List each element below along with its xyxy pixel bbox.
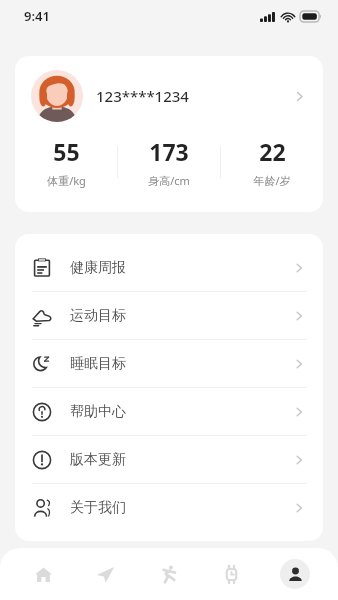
staticText: 身高/cm xyxy=(148,173,190,188)
button[interactable]: 健康周报 xyxy=(15,244,323,291)
staticText: 关于我们 xyxy=(70,499,292,517)
button[interactable]: Watch xyxy=(200,548,263,600)
button[interactable]: 版本更新 xyxy=(15,436,323,483)
staticText: 睡眠目标 xyxy=(70,355,292,373)
button[interactable]: 运动目标 xyxy=(15,292,323,339)
staticText: 年龄/岁 xyxy=(253,173,291,188)
button[interactable]: 睡眠目标 xyxy=(15,340,323,387)
button[interactable]: Home xyxy=(12,548,74,600)
button[interactable]: 帮助中心 xyxy=(15,388,323,435)
staticText: 9:41 xyxy=(24,7,50,25)
button[interactable]: Messages xyxy=(74,548,137,600)
button[interactable]: Profile xyxy=(263,548,326,600)
staticText: 55 xyxy=(53,136,80,167)
staticText: 健康周报 xyxy=(70,259,292,277)
staticText: 173 xyxy=(149,136,189,167)
button[interactable]: Activity xyxy=(137,548,200,600)
button[interactable]: 关于我们 xyxy=(15,484,323,531)
staticText: 版本更新 xyxy=(70,451,292,469)
staticText: 帮助中心 xyxy=(70,403,292,421)
staticText: 22 xyxy=(259,136,286,167)
staticText: 体重/kg xyxy=(47,173,86,188)
staticText: 123****1234 xyxy=(96,86,292,106)
staticText: 运动目标 xyxy=(70,307,292,325)
button[interactable]: 123****1234 xyxy=(15,56,323,132)
